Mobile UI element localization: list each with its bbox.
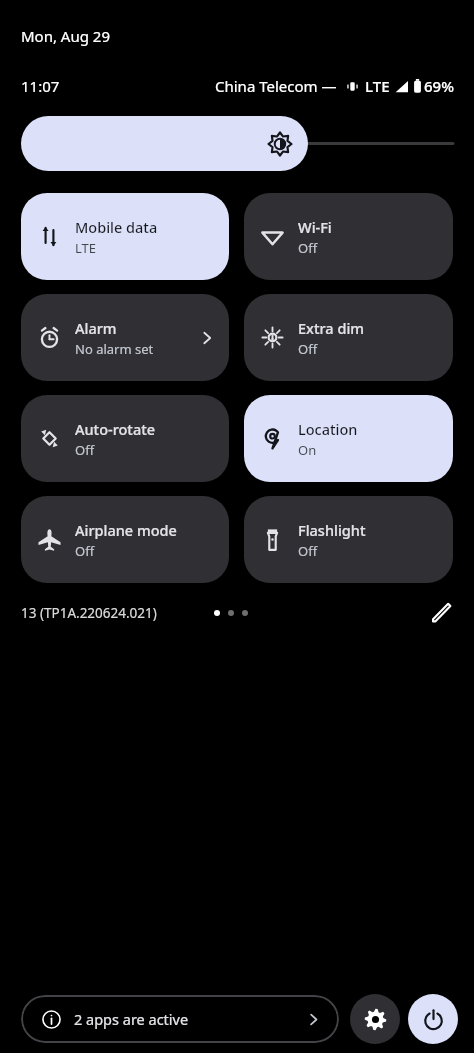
staticText: Off	[298, 542, 318, 560]
button[interactable]: Flashlight	[244, 496, 453, 583]
staticText: LTE	[75, 239, 97, 257]
staticText: 2 apps are active	[74, 1009, 189, 1029]
button[interactable]: Brightness	[21, 116, 453, 171]
button[interactable]: Alarm	[21, 294, 229, 381]
staticText: Location	[298, 419, 358, 439]
staticText: Flashlight	[298, 520, 366, 540]
button[interactable]: Auto-rotate	[21, 395, 229, 482]
staticText: Off	[75, 542, 95, 560]
staticText: Off	[298, 239, 318, 257]
button[interactable]: 2 apps are active	[21, 995, 339, 1043]
staticText: Extra dim	[298, 318, 365, 338]
staticText: Mobile data	[75, 217, 158, 237]
staticText: China Telecom —	[215, 76, 337, 96]
staticText: Auto-rotate	[75, 419, 156, 439]
staticText: Mon, Aug 29	[21, 26, 111, 46]
button[interactable]: Settings	[350, 994, 400, 1044]
button[interactable]: Edit tiles	[428, 599, 456, 627]
button[interactable]: Power	[408, 994, 458, 1044]
button[interactable]: Location	[244, 395, 453, 482]
staticText: LTE	[365, 76, 390, 96]
staticText: Wi-Fi	[298, 217, 332, 237]
button[interactable]: Wi-Fi	[244, 193, 453, 280]
button[interactable]: Extra dim	[244, 294, 453, 381]
button[interactable]: Airplane mode	[21, 496, 229, 583]
staticText: Off	[75, 441, 95, 459]
staticText: On	[298, 441, 317, 459]
staticText: 11:07	[21, 76, 60, 96]
staticText: No alarm set	[75, 340, 154, 358]
staticText: Off	[298, 340, 318, 358]
staticText: Alarm	[75, 318, 117, 338]
staticText: 13 (TP1A.220624.021)	[21, 604, 157, 622]
staticText: Airplane mode	[75, 520, 177, 540]
staticText: 69%	[424, 76, 454, 96]
button[interactable]: Mobile data	[21, 193, 229, 280]
